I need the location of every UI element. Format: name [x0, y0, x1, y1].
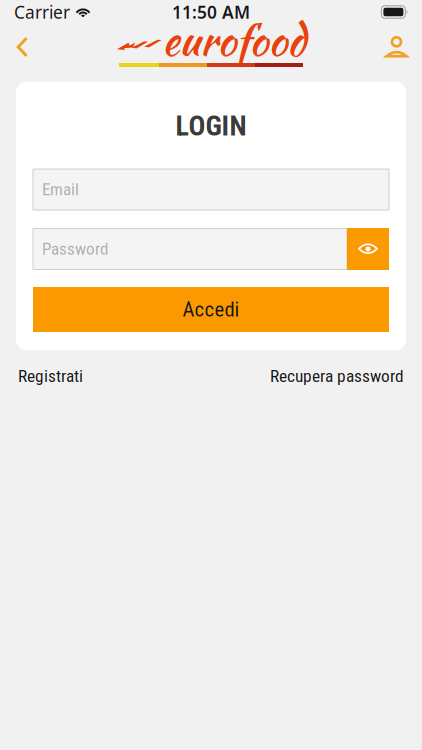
button[interactable]: Show password: [347, 228, 389, 270]
staticText: Accedi: [182, 297, 239, 322]
button[interactable]: Registrati: [18, 366, 83, 386]
staticText: LOGIN: [175, 110, 246, 142]
button[interactable]: Recupera password: [270, 366, 404, 386]
staticText: Carrier: [14, 0, 70, 23]
staticText: eurofood: [162, 9, 305, 71]
button[interactable]: Back: [0, 24, 43, 70]
staticText: Password: [42, 239, 108, 259]
button[interactable]: Accedi: [33, 287, 389, 332]
staticText: Registrati: [18, 366, 83, 386]
staticText: 11:50 AM: [172, 0, 250, 23]
staticText: Recupera password: [270, 366, 404, 386]
button[interactable]: Account: [372, 24, 422, 70]
staticText: Email: [42, 179, 79, 199]
